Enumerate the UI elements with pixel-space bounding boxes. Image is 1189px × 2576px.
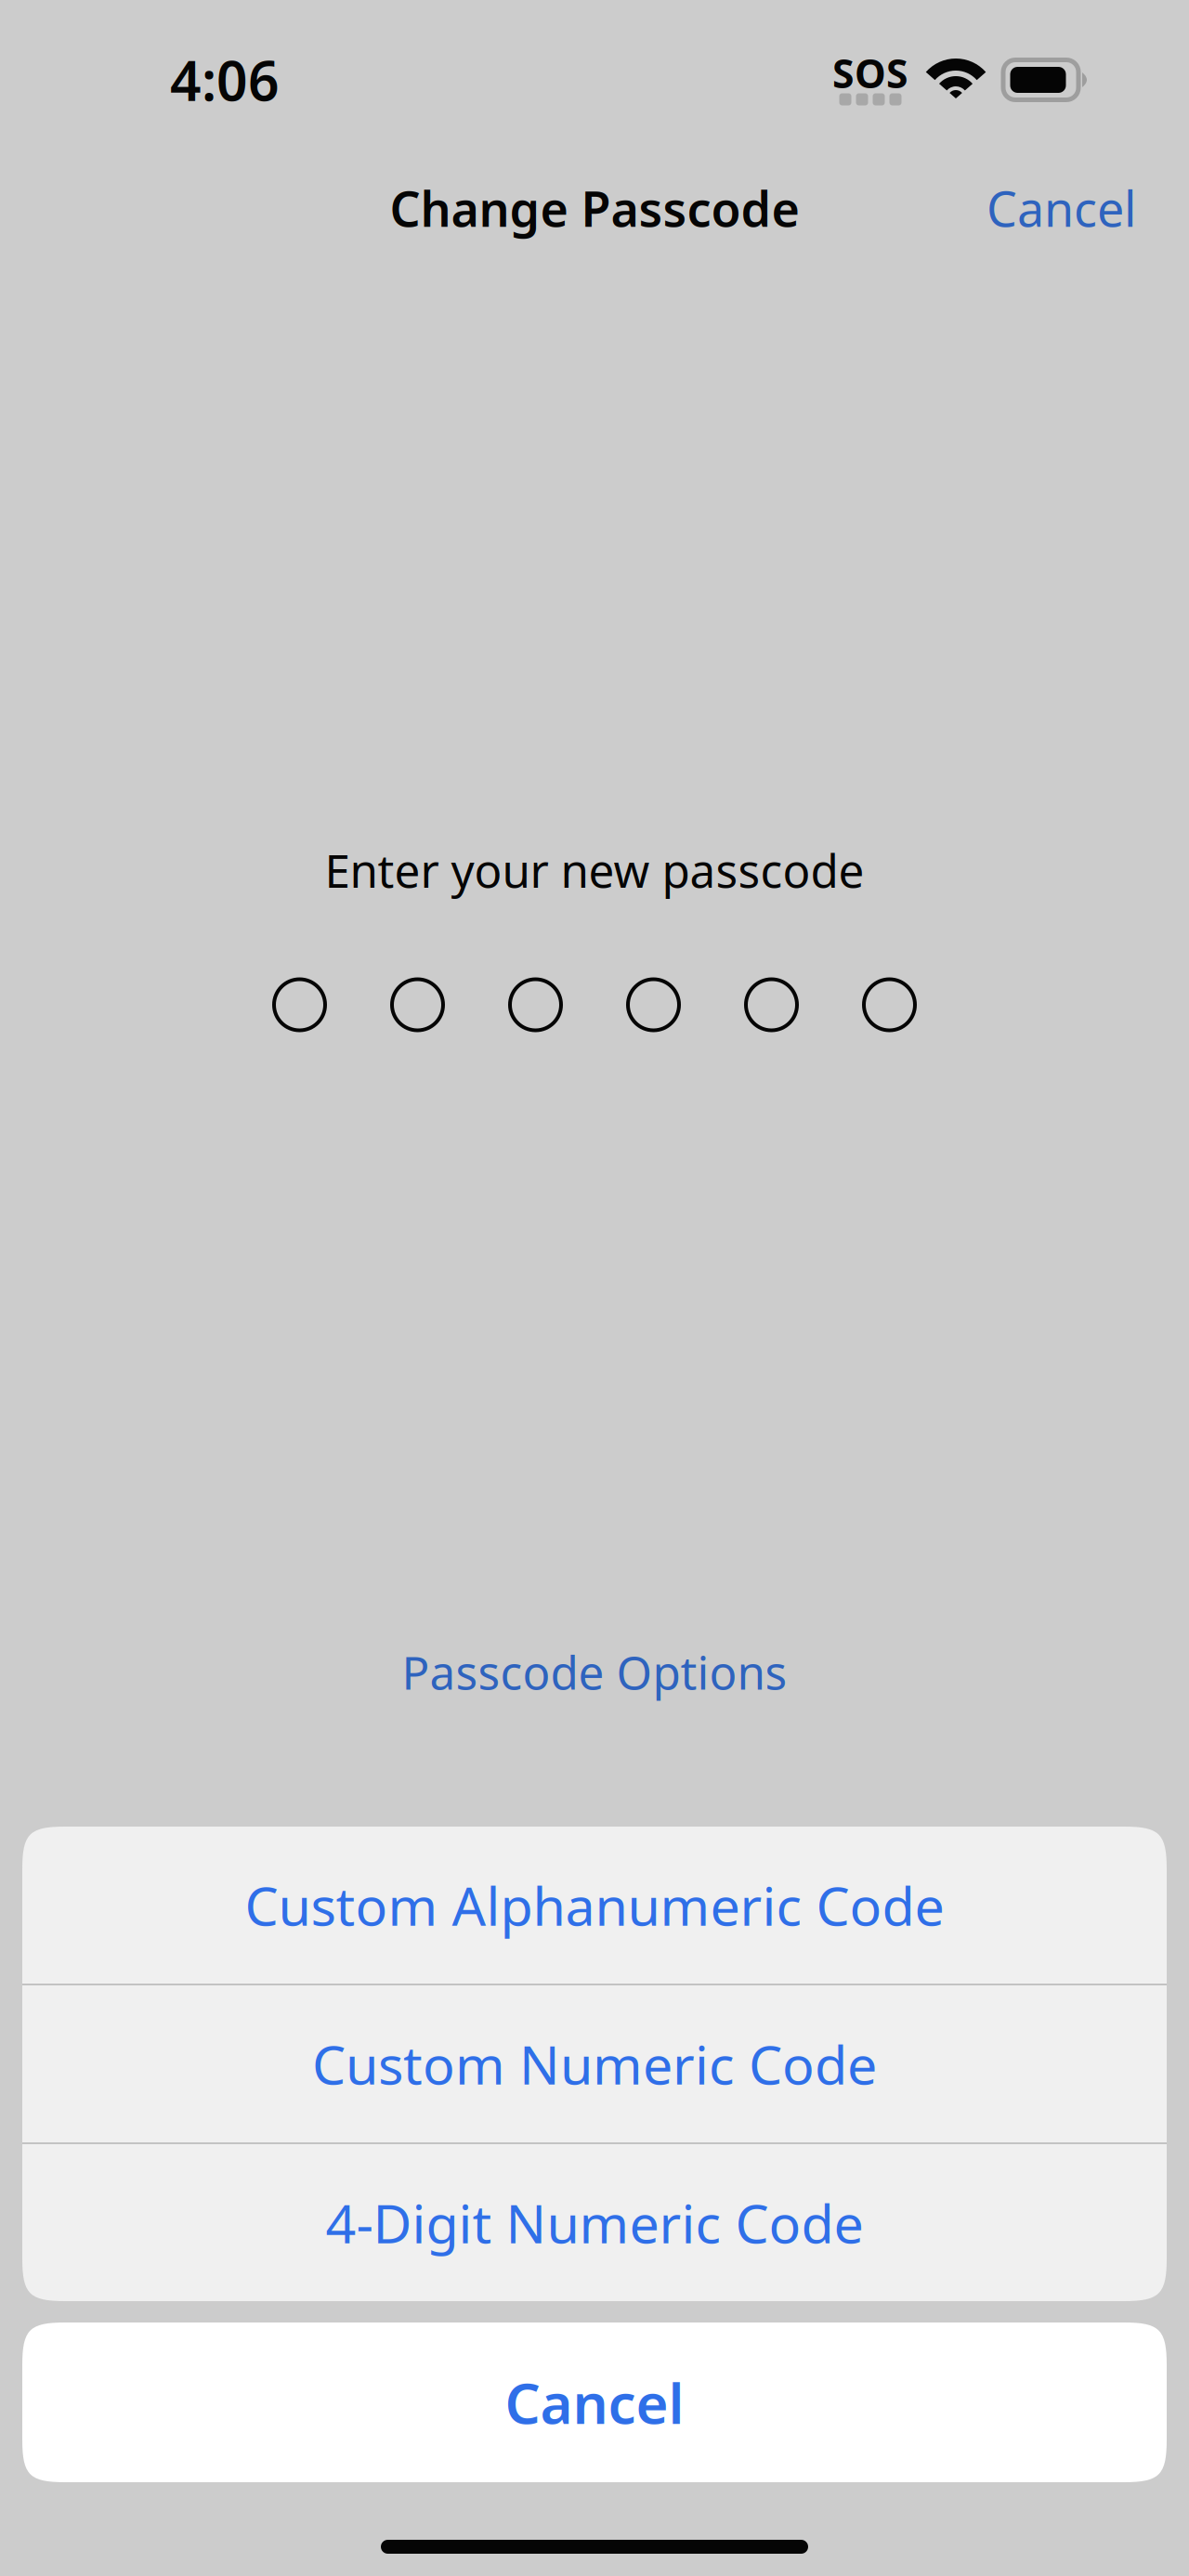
staticText: Passcode Options [402,1641,787,1702]
button[interactable]: Cancel [968,159,1155,257]
button[interactable]: Cancel [22,2322,1167,2482]
staticText: Cancel [505,2365,684,2439]
button[interactable]: Custom Alphanumeric Code [22,1827,1167,1984]
staticText: SOS [832,47,908,99]
staticText: Change Passcode [390,176,799,240]
button[interactable]: Passcode Options [374,1626,815,1717]
staticText: 4-Digit Numeric Code [326,2187,863,2258]
staticText: Custom Numeric Code [312,2028,877,2099]
button[interactable]: 4-Digit Numeric Code [22,2144,1167,2301]
staticText: Cancel [986,176,1136,240]
button[interactable]: Custom Numeric Code [22,1985,1167,2142]
staticText: Enter your new passcode [325,839,864,900]
staticText: Custom Alphanumeric Code [245,1870,944,1940]
staticText: 4:06 [170,44,280,116]
